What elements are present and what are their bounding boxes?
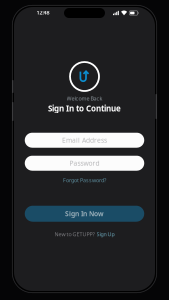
staticText: New to GETUPP? [54, 231, 94, 238]
staticText: Sign In to Continue [48, 103, 121, 114]
staticText: Password [69, 159, 99, 168]
staticText: Email Address [62, 136, 107, 145]
button[interactable]: Password [25, 156, 144, 171]
button[interactable]: Email Address [25, 133, 144, 148]
button[interactable]: Sign Up [96, 231, 114, 238]
staticText: Sign Up [96, 231, 114, 238]
staticText: Sign In Now [65, 209, 104, 218]
staticText: 12:48 [36, 9, 49, 16]
staticText: Forgot Password? [63, 177, 106, 184]
button[interactable]: Sign In Now [25, 206, 144, 222]
button[interactable]: Forgot Password? [25, 177, 144, 184]
staticText: Welcome Back [66, 95, 102, 102]
